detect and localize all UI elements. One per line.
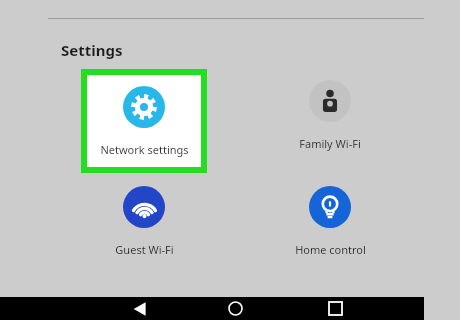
other: Guest Wi-Fi xyxy=(123,186,165,228)
staticText: Family Wi-Fi xyxy=(299,136,361,151)
button[interactable]: Home control xyxy=(272,186,388,257)
other: Home control xyxy=(309,186,351,228)
staticText: Home control xyxy=(295,242,366,257)
staticText: Network settings xyxy=(100,142,189,157)
staticText: Settings xyxy=(61,40,123,60)
other: Family Wi-Fi xyxy=(309,80,351,122)
button[interactable]: Recent apps xyxy=(315,297,355,320)
button[interactable]: Network settings xyxy=(81,69,207,173)
button[interactable]: Guest Wi-Fi xyxy=(86,186,202,257)
staticText: Guest Wi-Fi xyxy=(115,242,174,257)
button[interactable]: Back xyxy=(120,297,160,320)
button[interactable]: Family Wi-Fi xyxy=(272,80,388,151)
button[interactable]: Home xyxy=(215,297,255,320)
